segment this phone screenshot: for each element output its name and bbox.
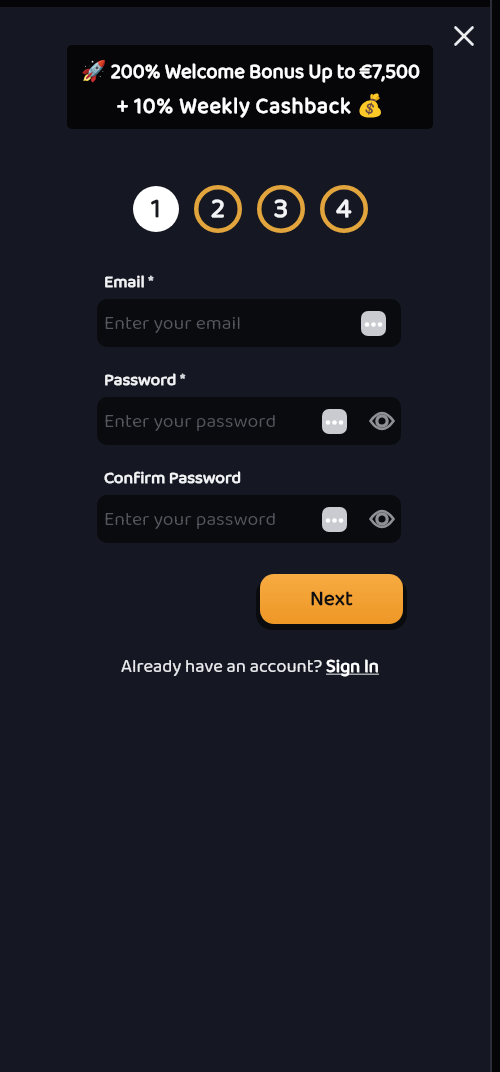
staticText: Enter your password [104,504,277,535]
button[interactable]: Enter your password [97,397,401,445]
staticText: 1 [151,187,161,232]
button[interactable]: 1 [133,186,179,232]
button[interactable]: Enter your email [97,299,401,347]
staticText: 3 [274,187,289,232]
staticText: 4 [336,187,352,232]
staticText: Enter your email [104,308,241,339]
staticText: Password * [104,366,186,394]
staticText: + 10% Weekly Cashback 💰 [116,89,385,124]
button[interactable]: Enter your password [97,495,401,543]
staticText: Confirm Password [104,464,242,492]
button[interactable]: Next [260,574,403,624]
staticText: Email * [104,268,154,296]
button[interactable] [369,506,395,532]
staticText: Enter your password [104,406,277,437]
button[interactable] [450,22,478,50]
staticText: 🚀 200% Welcome Bonus Up to €7,500 [81,56,420,89]
staticText: 2 [211,187,226,232]
button[interactable]: 4 [320,185,368,233]
button[interactable]: 2 [194,185,242,233]
button[interactable]: 🚀 200% Welcome Bonus Up to €7,500 [67,45,433,129]
staticText: Next [310,582,353,616]
button[interactable]: Sign In [326,652,379,682]
button[interactable]: 3 [257,185,305,233]
button[interactable] [369,408,395,434]
staticText: Already have an account? [121,652,326,682]
